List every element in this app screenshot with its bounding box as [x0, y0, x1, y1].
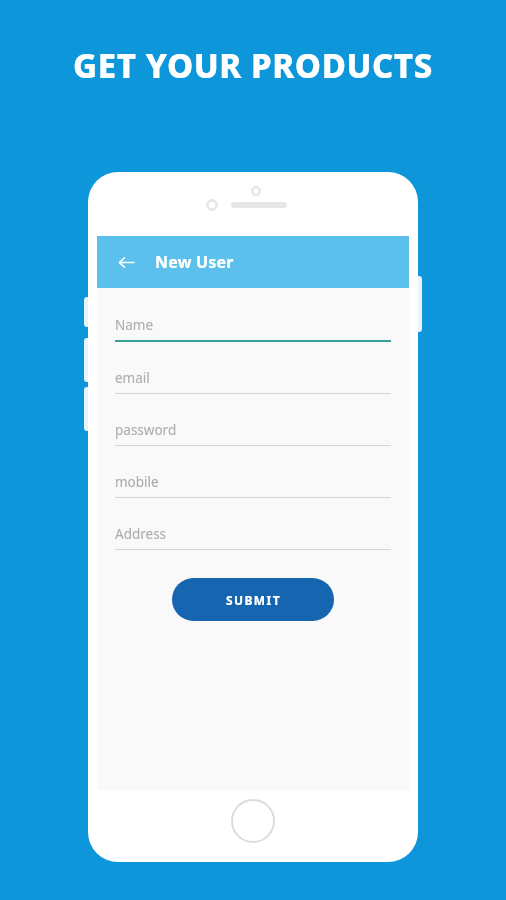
button[interactable]: Address — [115, 525, 391, 550]
button[interactable]: password — [115, 421, 391, 446]
staticText: SUBMIT — [226, 592, 281, 608]
staticText: Address — [115, 525, 167, 543]
staticText: password — [115, 421, 177, 439]
staticText: New User — [155, 251, 234, 273]
staticText: GET YOUR PRODUCTS — [0, 43, 506, 88]
staticText: mobile — [115, 473, 159, 491]
staticText: email — [115, 369, 150, 387]
button[interactable]: Back — [111, 247, 141, 277]
button[interactable]: Name — [115, 316, 391, 342]
button[interactable]: mobile — [115, 473, 391, 498]
staticText: Name — [115, 316, 154, 334]
button[interactable]: email — [115, 369, 391, 394]
button[interactable]: Home — [231, 799, 275, 843]
button[interactable]: SUBMIT — [172, 578, 334, 621]
